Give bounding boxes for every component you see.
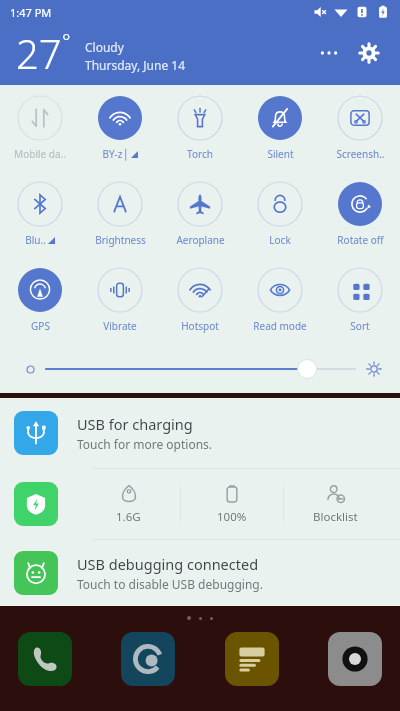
staticText: Silent xyxy=(267,147,294,161)
button[interactable]: Vibrate xyxy=(80,265,160,343)
button[interactable]: 1.6G xyxy=(77,483,180,525)
button[interactable]: Phone xyxy=(18,632,72,686)
staticText: Torch xyxy=(187,147,213,161)
staticText: 1.6G xyxy=(116,509,141,525)
button[interactable]: Torch xyxy=(160,93,240,171)
button[interactable]: USB for charging xyxy=(0,398,400,468)
button[interactable]: 1.6G xyxy=(0,469,400,539)
button[interactable]: Camera xyxy=(328,632,382,686)
button[interactable]: Read mode xyxy=(240,265,320,343)
button[interactable]: More options xyxy=(312,36,346,70)
button[interactable]: Mobile da.. xyxy=(0,93,80,171)
button[interactable]: Sort xyxy=(320,265,400,343)
staticText: Screensh.. xyxy=(336,147,385,161)
button[interactable]: Hotspot xyxy=(160,265,240,343)
staticText: Sort xyxy=(350,319,370,333)
button[interactable]: 100% xyxy=(181,483,283,525)
staticText: Blocklist xyxy=(313,509,358,525)
button[interactable]: Browser xyxy=(121,632,175,686)
staticText: 100% xyxy=(217,509,247,525)
button[interactable]: Rotate off xyxy=(320,179,400,257)
staticText: Touch to disable USB debugging. xyxy=(77,576,263,592)
staticText: 27 xyxy=(16,26,62,80)
button[interactable]: Settings xyxy=(352,36,386,70)
staticText: Lock xyxy=(269,233,291,247)
staticText: Read mode xyxy=(253,319,307,333)
staticText: Mobile da.. xyxy=(14,147,66,161)
staticText: ° xyxy=(62,28,71,55)
staticText: Brightness xyxy=(95,233,146,247)
button[interactable]: BY-z│ xyxy=(80,93,160,171)
staticText: BY-z│ xyxy=(102,147,129,161)
button[interactable]: Lock xyxy=(240,179,320,257)
button[interactable]: Notes xyxy=(225,632,279,686)
button[interactable]: Screensh.. xyxy=(320,93,400,171)
button[interactable]: Blu.. xyxy=(0,179,80,257)
button[interactable]: Brightness xyxy=(80,179,160,257)
button[interactable]: GPS xyxy=(0,265,80,343)
button[interactable]: Aeroplane xyxy=(160,179,240,257)
staticText: Cloudy xyxy=(85,39,124,55)
staticText: Thursday, June 14 xyxy=(85,57,186,73)
staticText: GPS xyxy=(31,319,50,333)
button[interactable]: USB debugging connected xyxy=(0,540,400,606)
staticText: Blu.. xyxy=(25,233,46,247)
button[interactable]: Blocklist xyxy=(284,483,386,525)
staticText: USB for charging xyxy=(77,414,193,434)
staticText: 1:47 PM xyxy=(10,5,52,20)
staticText: Rotate off xyxy=(337,233,384,247)
staticText: Touch for more options. xyxy=(77,436,213,452)
staticText: Hotspot xyxy=(181,319,219,333)
staticText: Aeroplane xyxy=(176,233,225,247)
button[interactable]: Silent xyxy=(240,93,320,171)
staticText: Vibrate xyxy=(103,319,137,333)
staticText: USB debugging connected xyxy=(77,554,259,574)
button[interactable]: Brightness slider xyxy=(26,349,382,389)
